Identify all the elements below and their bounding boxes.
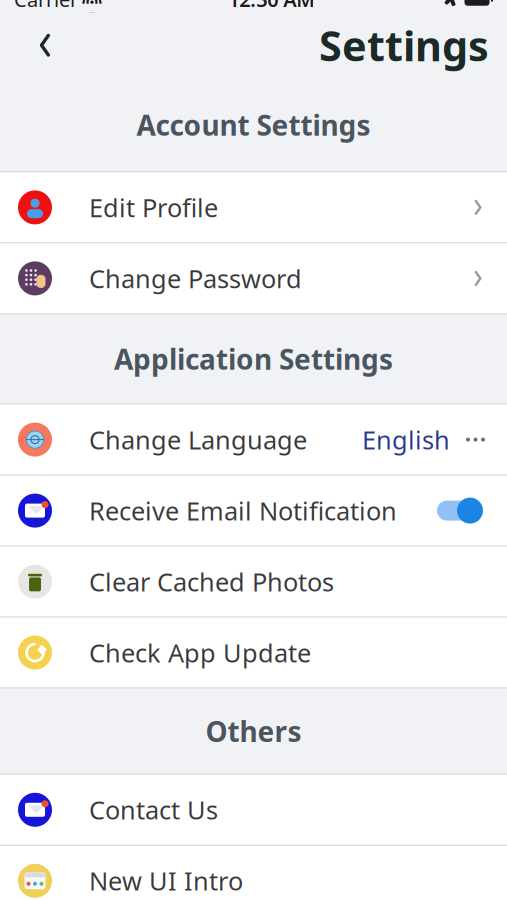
staticText: Check App Update [89,636,311,669]
button[interactable]: Check App Update [0,618,507,688]
staticText: Settings [319,18,489,73]
button[interactable]: Edit Profile [0,172,507,242]
button[interactable]: Back [18,18,72,72]
button[interactable]: Receive Email Notification [0,476,507,546]
button[interactable]: Contact Us [0,775,507,845]
staticText: Change Password [89,262,302,295]
staticText: Edit Profile [89,191,218,224]
staticText: 12:30 AM [228,0,315,13]
button[interactable]: New UI Intro [0,846,507,900]
staticText: New UI Intro [89,864,243,898]
button[interactable]: Change Language [0,405,507,475]
staticText: Application Settings [114,340,393,378]
staticText: Account Settings [136,106,370,143]
staticText: Others [205,713,301,750]
staticText: Clear Cached Photos [89,565,334,598]
button[interactable]: Clear Cached Photos [0,547,507,617]
staticText: Carrier [14,0,78,13]
staticText: English [362,423,450,456]
staticText: Contact Us [89,793,218,827]
button[interactable]: Change Password [0,243,507,313]
staticText: Change Language [89,423,307,456]
staticText: Receive Email Notification [89,494,397,527]
